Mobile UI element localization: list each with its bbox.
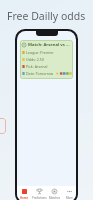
staticText: More	[66, 196, 73, 200]
staticText: League: Premier	[26, 50, 54, 55]
button[interactable]: Predictions	[32, 188, 47, 200]
staticText: Predictions	[32, 196, 47, 200]
staticText: Home	[20, 196, 29, 200]
staticText: Date: Tomorrow	[26, 71, 54, 76]
button[interactable]: Home	[17, 188, 32, 200]
staticText: Free Dailly odds	[7, 9, 86, 23]
staticText: Odds: 2.50	[26, 57, 44, 62]
staticText: Matches	[49, 196, 61, 200]
staticText: Match: Arsenal vs Chelsea	[28, 42, 71, 48]
staticText: Pick: Arsenal	[26, 64, 48, 69]
button[interactable]: More	[62, 188, 76, 200]
button[interactable]: Matches	[47, 188, 62, 200]
button[interactable]: Match: Arsenal vs Chelsea	[20, 40, 73, 79]
